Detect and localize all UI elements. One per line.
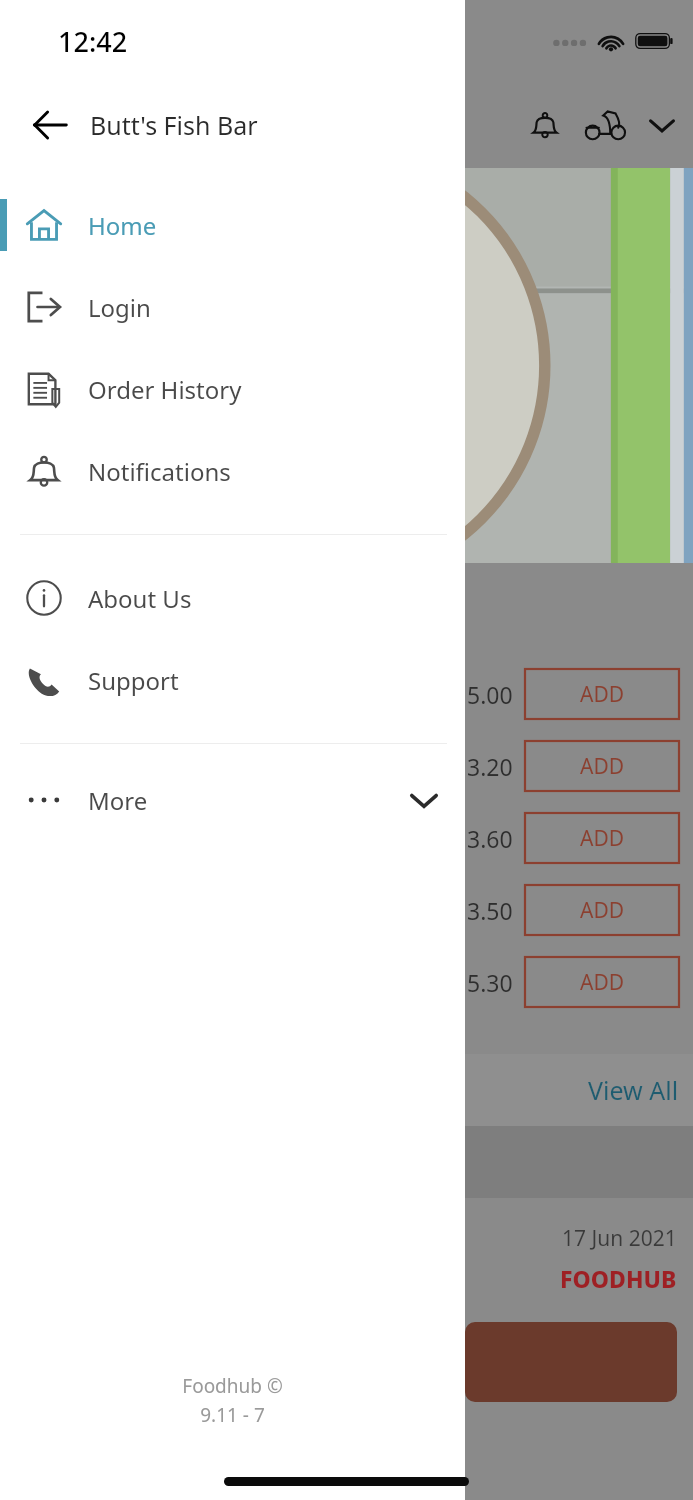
staticText: 3.50	[467, 895, 513, 926]
button[interactable]: Home	[0, 184, 465, 266]
button[interactable]: Expand	[643, 106, 681, 144]
button[interactable]: ADD	[525, 813, 679, 863]
staticText: ADD	[580, 968, 625, 997]
staticText: ADD	[580, 896, 625, 925]
staticText: 5.00	[467, 679, 513, 710]
button[interactable]: ADD	[525, 957, 679, 1007]
staticText: Notifications	[88, 455, 231, 488]
staticText: 9.11 - 7	[200, 1402, 265, 1428]
staticText: ADD	[580, 824, 625, 853]
button[interactable]: Delivery	[581, 105, 629, 145]
button[interactable]: ADD	[525, 669, 679, 719]
button[interactable]: View All	[588, 1073, 679, 1107]
staticText: Order History	[88, 373, 242, 406]
button[interactable]: ADD	[525, 741, 679, 791]
button[interactable]	[465, 1322, 677, 1402]
button[interactable]: Notifications	[525, 105, 565, 145]
staticText: 5.30	[467, 967, 513, 998]
staticText: More	[88, 784, 148, 817]
staticText: Home	[88, 209, 157, 242]
staticText: Login	[88, 291, 151, 324]
button[interactable]: Notifications	[0, 430, 465, 512]
staticText: ADD	[580, 752, 625, 781]
staticText: ADD	[580, 680, 625, 709]
button[interactable]: Login	[0, 266, 465, 348]
button[interactable]: About Us	[0, 557, 465, 639]
button[interactable]: ADD	[525, 885, 679, 935]
button[interactable]: Support	[0, 639, 465, 721]
staticText: 17 Jun 2021	[562, 1224, 677, 1253]
staticText: Support	[88, 664, 179, 697]
staticText: 3.20	[467, 751, 513, 782]
button[interactable]: More	[0, 764, 465, 836]
staticText: Foodhub ©	[182, 1373, 283, 1399]
button[interactable]: Order History	[0, 348, 465, 430]
staticText: 12:42	[58, 23, 128, 60]
staticText: Butt's Fish Bar	[90, 108, 258, 142]
button[interactable]: Back	[22, 97, 78, 153]
staticText: FOODHUB	[560, 1263, 677, 1294]
staticText: About Us	[88, 582, 192, 615]
staticText: 3.60	[467, 823, 513, 854]
